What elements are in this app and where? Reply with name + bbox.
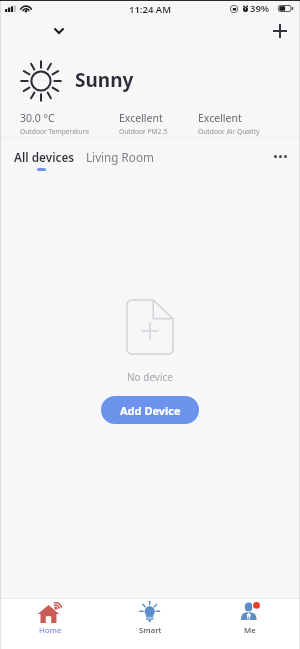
button[interactable]: All devices [8,143,77,176]
button[interactable]: Home [0,599,100,649]
staticText: No device [127,370,173,384]
button[interactable]: Me [200,599,300,649]
button[interactable]: Living Room [82,143,150,169]
staticText: Outdoor Temperature [20,127,89,136]
staticText: Add Device [120,403,181,418]
button[interactable]: Add Device [101,396,199,424]
staticText: Excellent [198,111,242,125]
button[interactable]: Add device [267,18,293,44]
staticText: 30.0 °C [20,111,55,125]
staticText: Excellent [119,111,163,125]
staticText: Smart [139,625,162,636]
button[interactable]: Switch home [46,18,72,44]
button[interactable]: Smart [100,599,200,649]
button[interactable]: More options [268,144,292,168]
staticText: Living Room [86,149,154,165]
staticText: Me [244,625,256,636]
staticText: 39% [250,2,270,15]
staticText: Outdoor PM2.5 [119,127,168,136]
staticText: Sunny [75,67,134,93]
staticText: 11:24 AM [129,3,172,16]
staticText: Home [39,625,62,636]
staticText: Outdoor Air Quality [198,127,260,136]
staticText: All devices [14,149,75,165]
